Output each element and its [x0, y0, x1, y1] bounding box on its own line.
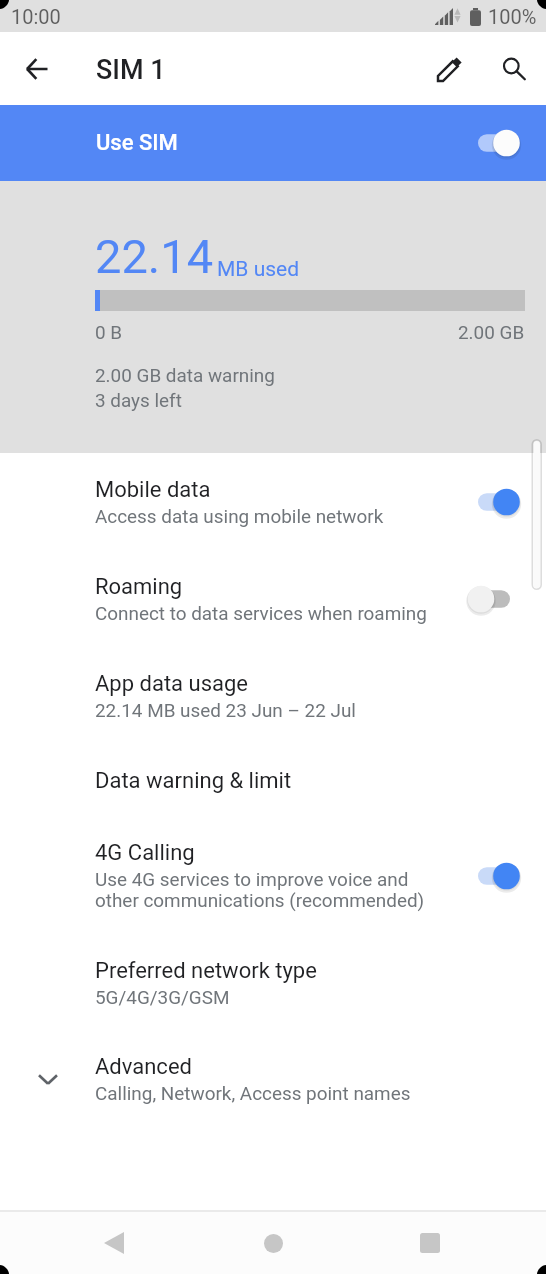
staticText: 2.00 GB data warning: [95, 364, 275, 386]
staticText: MB used: [217, 257, 300, 282]
staticText: 100%: [488, 5, 537, 28]
staticText: 10:00: [11, 5, 61, 28]
staticText: Use SIM: [96, 130, 178, 156]
staticText: Use 4G services to improve voice and oth…: [95, 868, 425, 912]
button[interactable]: Use SIM: [0, 105, 546, 181]
staticText: 22.14 MB used 23 Jun – 22 Jul: [95, 699, 356, 721]
staticText: 22.14: [95, 229, 214, 284]
staticText: SIM 1: [96, 54, 166, 86]
button[interactable]: Preferred network type: [0, 931, 546, 1027]
staticText: 4G Calling: [95, 840, 195, 866]
staticText: 2.00 GB: [458, 321, 525, 343]
staticText: Connect to data services when roaming: [95, 602, 427, 624]
button[interactable]: Roaming: [0, 546, 546, 643]
button[interactable]: Navigate up: [13, 45, 61, 93]
button[interactable]: Search: [490, 45, 538, 93]
button[interactable]: Recent apps: [394, 1212, 466, 1274]
button[interactable]: Advanced: [0, 1027, 546, 1123]
staticText: Advanced: [95, 1054, 192, 1080]
staticText: 5G/4G/3G/GSM: [95, 986, 230, 1008]
button[interactable]: Back: [78, 1212, 150, 1274]
staticText: 3 days left: [95, 389, 182, 411]
staticText: Preferred network type: [95, 958, 317, 984]
button[interactable]: Data warning & limit: [0, 740, 546, 812]
staticText: Mobile data: [95, 477, 211, 503]
staticText: Roaming: [95, 574, 183, 600]
button[interactable]: Mobile data: [0, 453, 546, 546]
staticText: Calling, Network, Access point names: [95, 1082, 411, 1104]
staticText: 0 B: [95, 321, 123, 343]
button[interactable]: App data usage: [0, 643, 546, 740]
button[interactable]: Home: [237, 1212, 309, 1274]
staticText: Access data using mobile network: [95, 505, 384, 527]
button[interactable]: 4G Calling: [0, 812, 546, 931]
staticText: App data usage: [95, 671, 248, 697]
button[interactable]: Edit: [426, 45, 474, 93]
staticText: Data warning & limit: [95, 768, 292, 794]
